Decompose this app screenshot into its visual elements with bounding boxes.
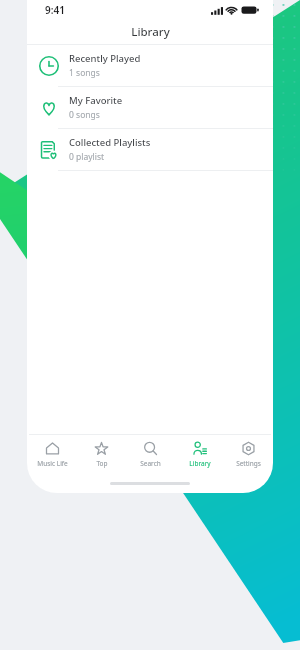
staticText: 9:41: [45, 3, 65, 17]
button[interactable]: Top: [77, 435, 126, 473]
staticText: Library: [189, 459, 211, 468]
button[interactable]: Search: [126, 435, 175, 473]
staticText: Top: [96, 459, 108, 468]
button[interactable]: Collected Playlists: [27, 129, 273, 170]
button[interactable]: Settings: [224, 435, 273, 473]
staticText: My Favorite: [69, 94, 123, 107]
staticText: Search: [140, 459, 161, 468]
staticText: 0 playlist: [69, 151, 105, 163]
button[interactable]: Library: [175, 435, 224, 473]
staticText: 0 songs: [69, 109, 100, 121]
staticText: Library: [131, 24, 170, 40]
staticText: Recently Played: [69, 52, 141, 65]
button[interactable]: Music Life: [27, 435, 77, 473]
staticText: Music Life: [37, 459, 68, 468]
button[interactable]: Recently Played: [27, 45, 273, 86]
staticText: Settings: [236, 459, 261, 468]
staticText: Collected Playlists: [69, 136, 151, 149]
button[interactable]: My Favorite: [27, 87, 273, 128]
staticText: 1 songs: [69, 67, 100, 79]
